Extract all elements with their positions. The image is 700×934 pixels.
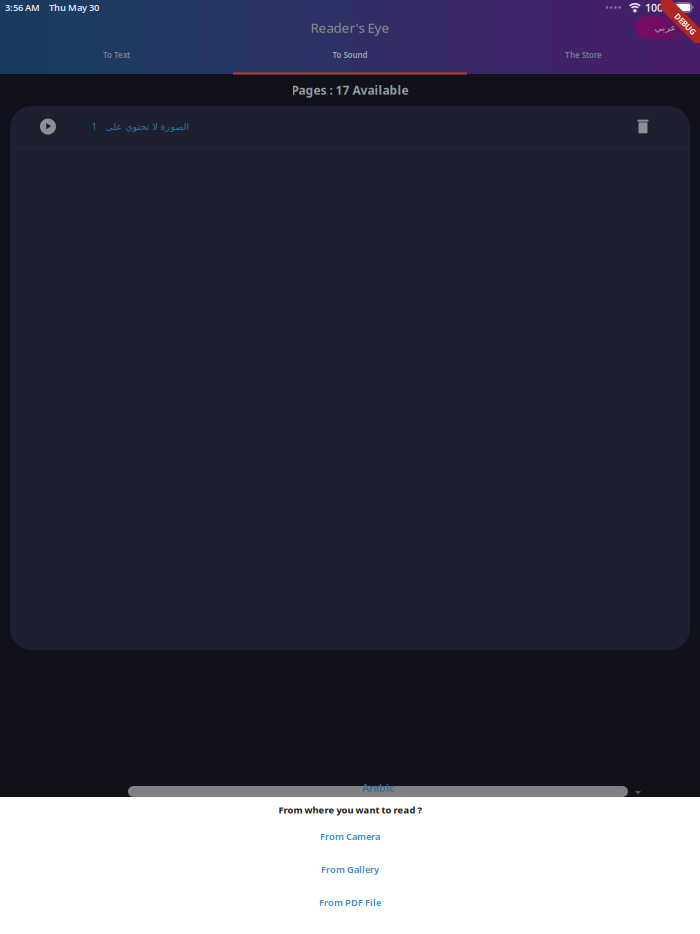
staticText: From PDF File	[319, 896, 381, 909]
staticText: Arabic	[362, 780, 394, 795]
button[interactable]: To Sound	[233, 48, 467, 74]
staticText: From where you want to read ?	[278, 804, 421, 816]
button[interactable]: عربي	[635, 16, 695, 38]
staticText: Reader's Eye	[310, 19, 389, 36]
button[interactable]: From Gallery	[0, 853, 700, 886]
button[interactable]: Delete	[628, 108, 658, 144]
staticText: The Store	[565, 50, 602, 60]
staticText: 3:56 AM	[5, 1, 40, 14]
staticText: Thu May 30	[49, 1, 99, 14]
button[interactable]: From PDF File	[0, 886, 700, 919]
staticText: To Sound	[332, 50, 367, 60]
staticText: To Text	[103, 50, 130, 60]
button[interactable]: The Store	[467, 48, 700, 74]
staticText: From Camera	[320, 830, 380, 843]
staticText: From Gallery	[321, 863, 379, 876]
button[interactable]: To Text	[0, 48, 233, 74]
staticText: الصورة لا تحتوي على 1	[91, 120, 189, 133]
button[interactable]: Play	[33, 108, 63, 144]
staticText: عربي	[654, 22, 676, 33]
staticText: DEBUG	[672, 19, 699, 29]
button[interactable]: From Camera	[0, 820, 700, 853]
staticText: 100%	[645, 0, 672, 15]
staticText: Pages : 17 Available	[291, 82, 408, 98]
